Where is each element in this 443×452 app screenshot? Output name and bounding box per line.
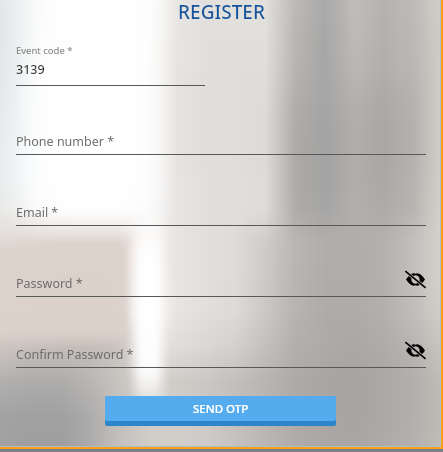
button[interactable]: Show password bbox=[402, 266, 428, 292]
button[interactable]: Show password bbox=[402, 337, 428, 363]
staticText: REGISTER bbox=[0, 0, 443, 25]
staticText: Confirm Password * bbox=[16, 346, 134, 363]
button[interactable]: SEND OTP bbox=[105, 396, 336, 421]
staticText: Event code * bbox=[16, 44, 73, 57]
staticText: Password * bbox=[16, 275, 83, 292]
staticText: Email * bbox=[16, 204, 59, 221]
staticText: SEND OTP bbox=[193, 401, 249, 417]
staticText: 3139 bbox=[16, 61, 45, 78]
staticText: Phone number * bbox=[16, 133, 115, 150]
